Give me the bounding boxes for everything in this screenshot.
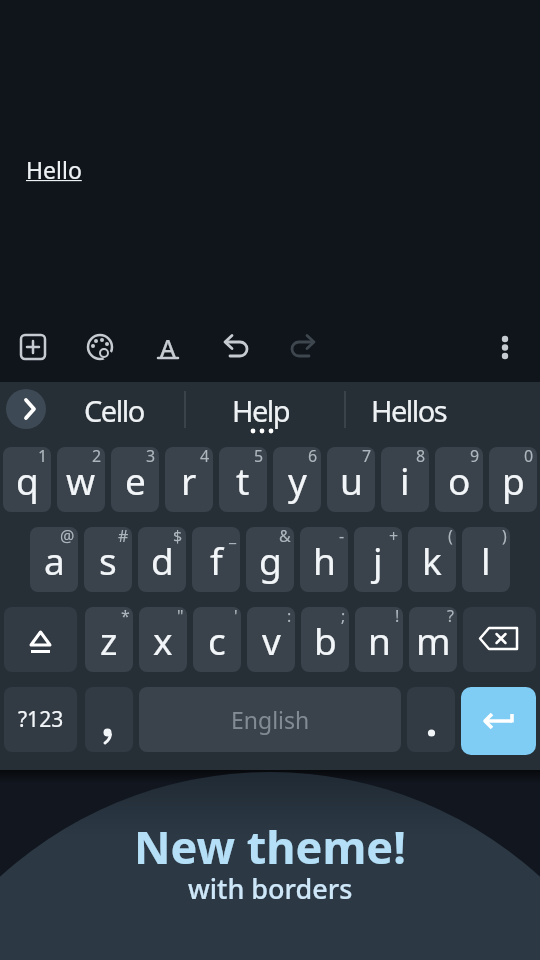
button[interactable]: n: [355, 607, 403, 672]
staticText: e: [125, 455, 146, 505]
staticText: Cello: [84, 391, 144, 430]
button[interactable]: [4, 607, 77, 672]
button[interactable]: English: [139, 687, 401, 752]
staticText: New theme!: [134, 816, 406, 877]
staticText: i: [400, 455, 410, 505]
staticText: 0: [524, 447, 534, 467]
staticText: &: [279, 527, 291, 547]
button[interactable]: [463, 607, 536, 672]
staticText: l: [481, 535, 491, 585]
staticText: m: [416, 615, 451, 665]
button[interactable]: v: [247, 607, 295, 672]
staticText: English: [231, 704, 310, 735]
staticText: 5: [254, 447, 264, 467]
button[interactable]: e: [111, 447, 159, 512]
button[interactable]: a: [30, 527, 78, 592]
staticText: ?123: [18, 705, 64, 734]
button[interactable]: [461, 687, 536, 755]
staticText: v: [262, 615, 281, 665]
staticText: h: [313, 535, 336, 585]
button[interactable]: [85, 687, 133, 752]
button[interactable]: w: [57, 447, 105, 512]
button[interactable]: d: [138, 527, 186, 592]
button[interactable]: g: [246, 527, 294, 592]
staticText: r: [181, 455, 197, 505]
staticText: -: [339, 527, 345, 547]
button[interactable]: m: [409, 607, 457, 672]
staticText: 3: [146, 447, 156, 467]
staticText: z: [100, 615, 118, 665]
staticText: A: [160, 331, 176, 364]
staticText: ': [234, 607, 238, 627]
staticText: ;: [341, 607, 346, 627]
staticText: Help: [232, 391, 290, 430]
button[interactable]: o: [435, 447, 483, 512]
staticText: :: [287, 607, 292, 627]
staticText: t: [236, 455, 250, 505]
staticText: ): [502, 527, 507, 547]
button[interactable]: [76, 323, 124, 371]
button[interactable]: [9, 323, 57, 371]
button[interactable]: s: [84, 527, 132, 592]
staticText: Hello: [26, 154, 82, 185]
button[interactable]: Cello: [50, 382, 178, 438]
staticText: o: [448, 455, 471, 505]
staticText: n: [368, 615, 391, 665]
staticText: u: [340, 455, 363, 505]
staticText: 9: [470, 447, 480, 467]
button[interactable]: b: [301, 607, 349, 672]
button[interactable]: Help: [182, 382, 340, 438]
button[interactable]: [6, 389, 46, 429]
staticText: f: [210, 535, 223, 585]
staticText: _: [229, 527, 237, 547]
staticText: (: [448, 527, 453, 547]
button[interactable]: u: [327, 447, 375, 512]
button[interactable]: x: [139, 607, 187, 672]
button[interactable]: l: [462, 527, 510, 592]
staticText: @: [60, 527, 75, 547]
staticText: j: [373, 535, 383, 585]
staticText: Hellos: [371, 391, 447, 430]
staticText: $: [173, 527, 183, 547]
button[interactable]: t: [219, 447, 267, 512]
staticText: 2: [92, 447, 102, 467]
button[interactable]: [481, 323, 529, 371]
staticText: ": [177, 607, 184, 627]
staticText: 7: [362, 447, 372, 467]
button[interactable]: Hellos: [346, 382, 472, 438]
staticText: a: [44, 535, 65, 585]
button[interactable]: p: [489, 447, 537, 512]
staticText: 1: [38, 447, 48, 467]
button[interactable]: ?123: [4, 687, 77, 752]
button[interactable]: [407, 687, 455, 752]
button[interactable]: q: [3, 447, 51, 512]
staticText: b: [314, 615, 337, 665]
button[interactable]: y: [273, 447, 321, 512]
button[interactable]: c: [193, 607, 241, 672]
button[interactable]: r: [165, 447, 213, 512]
staticText: x: [153, 615, 173, 665]
staticText: q: [16, 455, 39, 505]
button[interactable]: [212, 323, 260, 371]
button[interactable]: k: [408, 527, 456, 592]
button[interactable]: h: [300, 527, 348, 592]
staticText: k: [422, 535, 442, 585]
staticText: ?: [447, 607, 454, 627]
staticText: +: [389, 527, 399, 547]
staticText: g: [259, 535, 282, 585]
staticText: y: [288, 455, 307, 505]
staticText: 8: [416, 447, 426, 467]
button[interactable]: j: [354, 527, 402, 592]
button[interactable]: i: [381, 447, 429, 512]
button[interactable]: A: [144, 323, 192, 371]
staticText: 6: [308, 447, 318, 467]
button[interactable]: f: [192, 527, 240, 592]
staticText: #: [118, 527, 129, 547]
button[interactable]: z: [85, 607, 133, 672]
staticText: *: [121, 607, 130, 627]
staticText: d: [151, 535, 174, 585]
button[interactable]: [279, 323, 327, 371]
staticText: c: [208, 615, 226, 665]
staticText: with borders: [188, 870, 353, 907]
staticText: s: [99, 535, 117, 585]
